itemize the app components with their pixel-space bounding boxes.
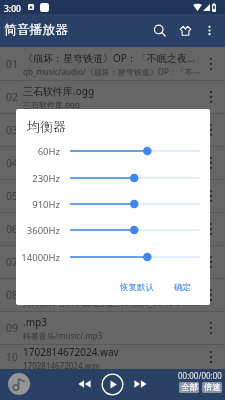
button[interactable]: Album art	[8, 373, 30, 395]
staticText: 三石软件库.ogg	[23, 99, 80, 110]
staticText: 07	[6, 255, 19, 269]
button[interactable]: 05	[0, 180, 225, 212]
staticText: 05	[6, 189, 19, 203]
staticText: music/稻香.m4a	[23, 231, 83, 242]
staticText: 简音播放器	[4, 22, 68, 38]
button[interactable]: Previous	[74, 374, 94, 394]
button[interactable]: Item menu	[203, 320, 219, 336]
button[interactable]: 10	[0, 345, 225, 369]
button[interactable]: 3600Hz	[16, 219, 210, 241]
staticText: 09	[6, 321, 19, 335]
staticText: 3:00	[4, 3, 21, 15]
staticText: 天天畅听/音乐下载/追风赶月到归人_08-42-54.mp3	[23, 282, 203, 296]
staticText: 起风了.mp3	[23, 150, 77, 164]
button[interactable]: Item menu	[203, 188, 219, 204]
button[interactable]: Item menu	[203, 349, 219, 365]
button[interactable]: 倍速	[202, 382, 222, 393]
staticText: music/download/起风了.mp3	[23, 165, 132, 176]
button[interactable]: Item menu	[203, 155, 219, 171]
staticText: 02	[6, 90, 19, 104]
button[interactable]: Item menu	[203, 89, 219, 105]
staticText: 14000Hz	[16, 251, 60, 264]
button[interactable]: Search	[146, 17, 172, 43]
staticText: 稻香.m4a	[23, 216, 67, 230]
staticText: 梓慕音乐/music/.mp3	[23, 330, 103, 341]
staticText: 04	[6, 156, 19, 170]
staticText: 晴天.flac	[23, 117, 63, 131]
staticText: 倍速	[204, 382, 221, 393]
button[interactable]: Item menu	[203, 254, 219, 270]
staticText: music/夜曲.ogg	[23, 198, 81, 209]
button[interactable]: Item menu	[203, 287, 219, 303]
button[interactable]: 确定	[169, 279, 196, 296]
staticText: 全部	[181, 382, 198, 393]
staticText: 确定	[174, 282, 191, 293]
staticText: 《崩坏：星穹铁道》OP：「不眠之夜...	[23, 51, 195, 65]
staticText: 01	[6, 57, 19, 71]
button[interactable]: 08	[0, 279, 225, 311]
staticText: 青花瓷.wav	[23, 249, 75, 263]
button[interactable]: 06	[0, 213, 225, 245]
staticText: 06	[6, 222, 19, 236]
staticText: 230Hz	[16, 172, 60, 185]
staticText: 60Hz	[16, 145, 60, 158]
button[interactable]: 恢复默认	[115, 279, 159, 296]
staticText: 天天畅听/音乐下载/追风赶月到归人_08-42-54.mp3	[23, 297, 203, 308]
button[interactable]: Item menu	[203, 56, 219, 72]
staticText: 三石软件库.ogg	[23, 84, 95, 98]
staticText: 1702814672024.wav	[23, 360, 100, 369]
staticText: .mp3	[23, 315, 47, 329]
button[interactable]: 09	[0, 312, 225, 344]
button[interactable]: 全部	[179, 382, 199, 393]
button[interactable]: More options	[198, 19, 220, 41]
button[interactable]: Item menu	[203, 122, 219, 138]
button[interactable]: 07	[0, 246, 225, 278]
staticText: 恢复默认	[120, 282, 154, 293]
button[interactable]: 230Hz	[16, 167, 210, 189]
button[interactable]: 14000Hz	[16, 246, 210, 268]
button[interactable]: Item menu	[203, 221, 219, 237]
staticText: 910Hz	[16, 198, 60, 211]
button[interactable]: 910Hz	[16, 193, 210, 215]
staticText: qb_music/audio/《崩坏：星穹铁道》OP：「不眠...	[23, 66, 203, 77]
button[interactable]: 04	[0, 147, 225, 179]
button[interactable]: Play	[100, 372, 124, 396]
staticText: 均衡器	[27, 118, 66, 134]
button[interactable]: 60Hz	[16, 140, 210, 162]
staticText: 3600Hz	[16, 224, 60, 237]
button[interactable]: 03	[0, 114, 225, 146]
staticText: 10	[6, 350, 19, 364]
button[interactable]: Next	[130, 374, 150, 394]
staticText: 00:00/00:00	[178, 370, 222, 381]
button[interactable]: 02	[0, 81, 225, 113]
staticText: qq_music/晴天.flac	[23, 132, 93, 143]
staticText: 03	[6, 123, 19, 137]
staticText: 1702814672024.wav	[23, 345, 119, 359]
staticText: 08	[6, 288, 19, 302]
button[interactable]: Theme	[172, 17, 198, 43]
button[interactable]: 01	[0, 48, 225, 80]
